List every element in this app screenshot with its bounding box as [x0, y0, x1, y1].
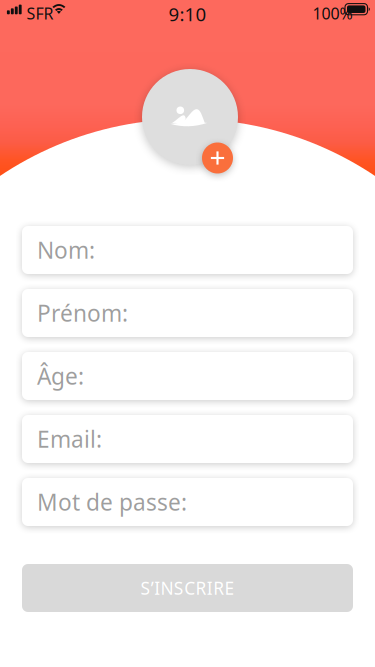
staticText: 100% [312, 3, 352, 24]
button[interactable]: Mot de passe: [22, 478, 353, 526]
button[interactable]: Âge: [22, 352, 353, 400]
staticText: Email: [37, 424, 102, 454]
staticText: S’INSCRIRE [135, 576, 240, 599]
button[interactable]: Ajouter une photo [202, 142, 233, 173]
button[interactable]: Choisir une photo [142, 69, 238, 165]
staticText: Mot de passe: [37, 487, 187, 517]
button[interactable]: Prénom: [22, 289, 353, 337]
staticText: Nom: [37, 235, 95, 265]
staticText: Prénom: [37, 298, 128, 328]
button[interactable]: Email: [22, 415, 353, 463]
staticText: Âge: [37, 361, 84, 391]
button[interactable]: Nom: [22, 226, 353, 274]
staticText: 9:10 [168, 2, 206, 26]
staticText: SFR [26, 3, 53, 24]
button[interactable]: S’INSCRIRE [22, 564, 353, 612]
